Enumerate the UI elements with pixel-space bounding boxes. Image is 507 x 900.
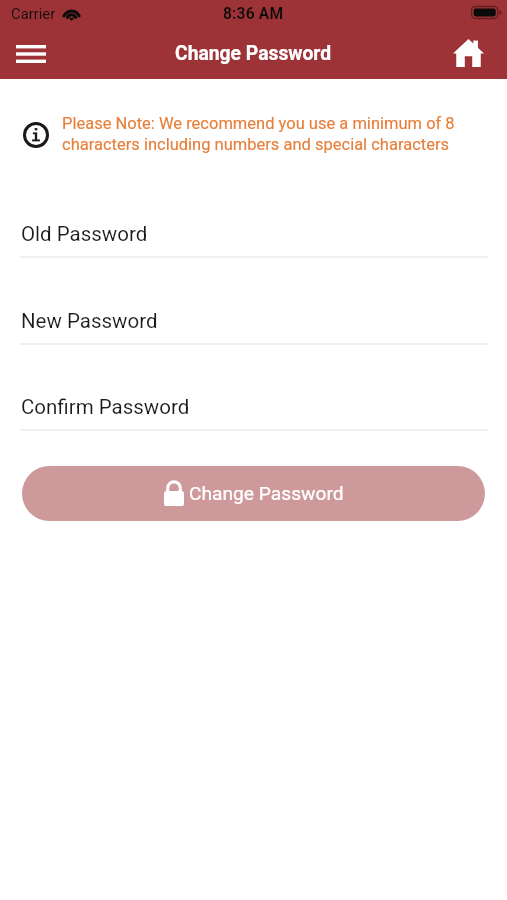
button[interactable]: New Password [0, 302, 507, 340]
button[interactable]: Home [437, 28, 507, 79]
staticText: Old Password [21, 222, 148, 246]
staticText: Change Password [189, 482, 344, 505]
staticText: 8:36 AM [223, 5, 284, 23]
staticText: Change Password [175, 42, 332, 65]
staticText: Carrier [11, 5, 56, 22]
button[interactable]: Menu [0, 28, 62, 79]
staticText: Confirm Password [21, 395, 190, 419]
button[interactable]: Old Password [0, 215, 507, 253]
staticText: Please Note: We recommend you use a mini… [62, 113, 494, 155]
button[interactable]: Change Password [22, 466, 485, 521]
staticText: New Password [21, 309, 158, 333]
button[interactable]: Confirm Password [0, 388, 507, 426]
